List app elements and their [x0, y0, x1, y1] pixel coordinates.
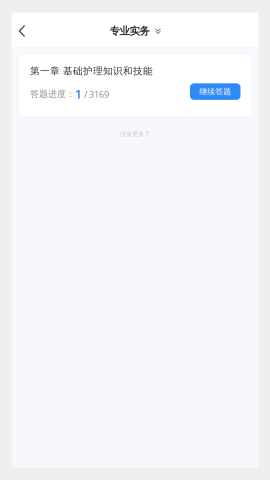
button[interactable]: 专业实务 — [105, 20, 165, 41]
staticText: 1 — [75, 86, 82, 102]
staticText: 专业实务 — [109, 24, 149, 37]
staticText: 答题进度： — [30, 88, 75, 100]
button[interactable]: 继续答题 — [190, 83, 240, 100]
staticText: 第一章 基础护理知识和技能 — [30, 65, 153, 77]
staticText: 没有更多了 — [120, 130, 150, 138]
staticText: / 3169 — [82, 88, 109, 100]
button[interactable]: Back — [13, 16, 30, 46]
staticText: 继续答题 — [199, 87, 231, 97]
